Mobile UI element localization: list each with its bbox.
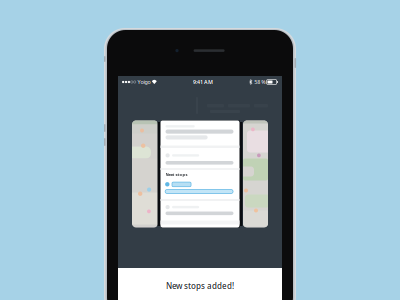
button[interactable]: Next stops (160, 120, 239, 227)
staticText: 58 % (254, 78, 265, 86)
button[interactable]: New stops added! (118, 268, 282, 300)
staticText: Next stops (165, 172, 187, 177)
staticText: Yoigo (137, 78, 150, 86)
staticText: 9:41 AM (193, 78, 213, 86)
button[interactable]: Previous route (132, 120, 158, 227)
staticText: New stops added! (166, 281, 234, 291)
button[interactable]: Next route (243, 120, 268, 227)
